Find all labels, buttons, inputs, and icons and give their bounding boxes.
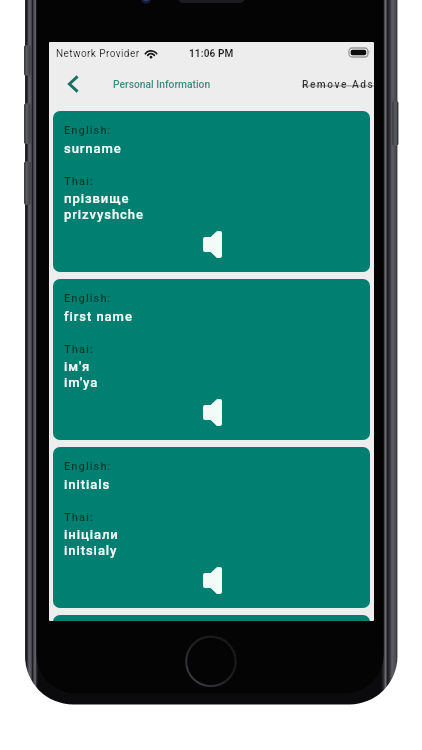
staticText: first name <box>64 309 133 324</box>
button[interactable]: Play pronunciation <box>197 397 227 427</box>
staticText: initsialy <box>64 543 118 558</box>
button[interactable]: English: <box>53 279 370 440</box>
button[interactable]: Play pronunciation <box>197 565 227 595</box>
button[interactable]: Personal Information <box>107 71 217 94</box>
button[interactable]: Remove Ads <box>296 71 374 94</box>
staticText: Remove Ads <box>302 79 374 91</box>
staticText: initials <box>64 477 111 492</box>
staticText: ініціали <box>64 527 119 542</box>
staticText: Thai: <box>64 343 94 356</box>
staticText: прізвище <box>64 191 130 206</box>
staticText: prizvyshche <box>64 207 144 222</box>
staticText: ім'я <box>64 359 91 374</box>
staticText: Network Provider <box>56 48 140 60</box>
staticText: Thai: <box>64 511 94 524</box>
button[interactable]: Back <box>61 69 91 99</box>
button[interactable]: Play pronunciation <box>197 229 227 259</box>
button[interactable]: English: <box>53 447 370 608</box>
staticText: English: <box>64 292 112 305</box>
button[interactable]: English: <box>53 111 370 272</box>
staticText: surname <box>64 141 122 156</box>
staticText: Thai: <box>64 175 94 188</box>
staticText: im'ya <box>64 375 99 390</box>
staticText: Personal Information <box>113 78 211 90</box>
staticText: 11:06 PM <box>189 48 234 60</box>
button[interactable]: English: <box>53 615 370 621</box>
staticText: English: <box>64 460 112 473</box>
staticText: English: <box>64 124 112 137</box>
